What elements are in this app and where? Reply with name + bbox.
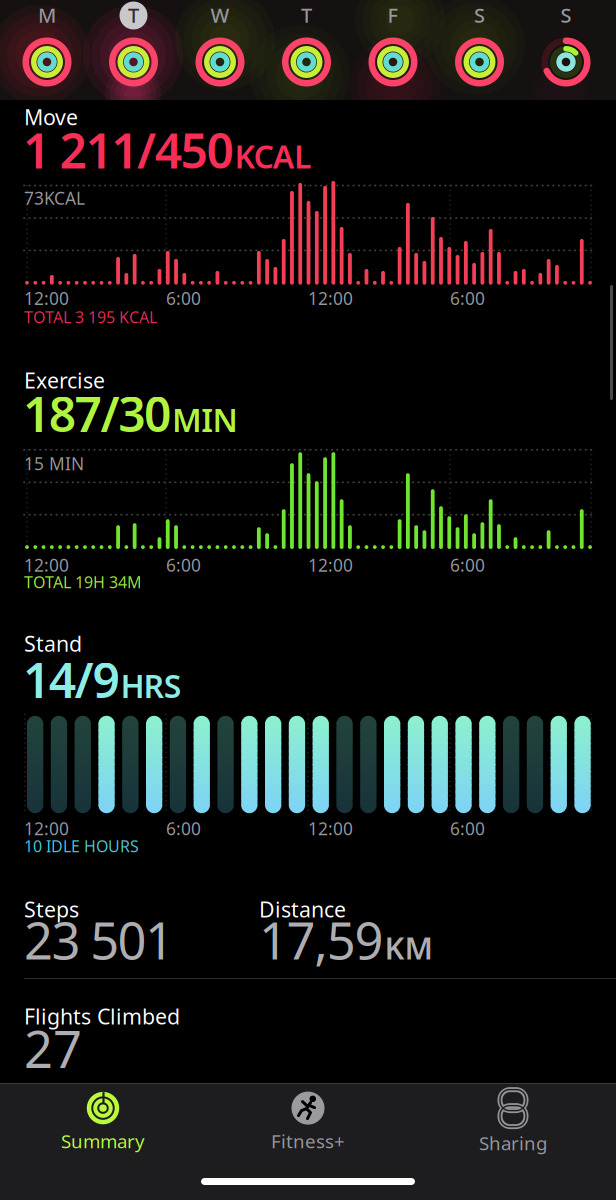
staticText: 15 MIN [24,452,84,475]
staticText: Distance [259,895,346,923]
staticText: KCAL [234,135,311,177]
staticText: 10 IDLE HOURS [24,835,139,857]
staticText: 17,59 [259,906,383,973]
staticText: Stand [24,629,82,658]
staticText: Sharing [479,1131,547,1155]
staticText: T [128,2,139,28]
staticText: Fitness+ [271,1129,345,1153]
staticText: Summary [61,1129,145,1153]
button[interactable]: Steps [24,897,259,961]
staticText: Move [24,103,78,131]
staticText: 187/30 [23,382,171,445]
staticText: 1 211/450 [23,118,233,182]
staticText: TOTAL 19H 34M [24,571,142,593]
button[interactable]: Summary [0,1089,205,1155]
button[interactable]: W [192,0,248,96]
staticText: 12:00 [24,817,69,840]
staticText: 12:00 [308,554,353,577]
button[interactable]: Move [0,104,616,344]
staticText: M [38,2,56,28]
staticText: 12:00 [308,817,353,840]
staticText: T [301,2,312,28]
staticText: 14/9 [23,648,119,711]
staticText: KM [384,927,432,968]
button[interactable]: T [278,0,334,96]
button[interactable]: Exercise [0,368,616,608]
staticText: S [560,2,571,28]
button[interactable]: Flights Climbed [0,1004,616,1068]
staticText: 6:00 [450,554,485,577]
staticText: TOTAL 3 195 KCAL [24,306,157,328]
staticText: 6:00 [166,554,201,577]
staticText: Flights Climbed [24,1002,180,1030]
staticText: 73KCAL [24,186,85,209]
staticText: 12:00 [24,554,69,577]
staticText: 12:00 [308,287,353,310]
button[interactable]: Fitness+ [205,1089,410,1155]
staticText: Steps [24,895,79,923]
button[interactable]: Stand [0,631,616,861]
staticText: 6:00 [450,287,485,310]
button[interactable]: T [105,0,161,96]
staticText: W [210,2,229,28]
button[interactable]: Sharing [410,1089,615,1155]
staticText: 12:00 [24,287,69,310]
button[interactable]: M [19,0,75,96]
button[interactable]: F [365,0,421,96]
staticText: 6:00 [166,287,201,310]
staticText: S [474,2,485,28]
staticText: 6:00 [450,817,485,840]
button[interactable]: S [451,0,507,96]
button[interactable]: S [538,0,594,96]
staticText: 6:00 [166,817,201,840]
staticText: Exercise [24,366,105,394]
button[interactable]: Distance [259,897,494,961]
staticText: F [387,2,398,28]
staticText: HRS [120,664,182,707]
staticText: 23 501 [24,906,174,973]
staticText: 27 [24,1015,82,1082]
staticText: MIN [172,398,237,441]
